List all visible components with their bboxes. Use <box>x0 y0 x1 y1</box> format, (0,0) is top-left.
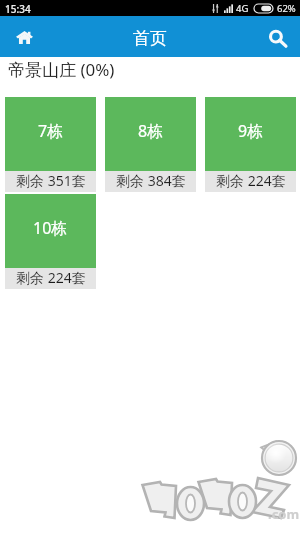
button[interactable]: 9栋 <box>205 97 296 192</box>
staticText: 15:34 <box>5 2 31 16</box>
staticText: 首页 <box>133 28 167 49</box>
staticText: 8栋 <box>138 120 164 142</box>
staticText: 10栋 <box>33 217 68 239</box>
staticText: 7栋 <box>38 120 64 142</box>
staticText: .com <box>268 505 300 523</box>
staticText: 4G <box>236 2 249 15</box>
staticText: 剩余 384套 <box>116 171 186 190</box>
button[interactable]: 8栋 <box>105 97 196 192</box>
staticText: 剩余 224套 <box>16 268 86 287</box>
staticText: 帝景山庄 (0%) <box>8 58 115 81</box>
staticText: 62% <box>277 2 296 15</box>
button[interactable]: 7栋 <box>5 97 96 192</box>
button[interactable]: Home <box>0 16 44 57</box>
staticText: 剩余 351套 <box>16 171 86 190</box>
button[interactable]: Search <box>256 16 300 57</box>
staticText: 剩余 224套 <box>216 171 286 190</box>
staticText: 9栋 <box>238 120 264 142</box>
button[interactable]: 10栋 <box>5 194 96 289</box>
